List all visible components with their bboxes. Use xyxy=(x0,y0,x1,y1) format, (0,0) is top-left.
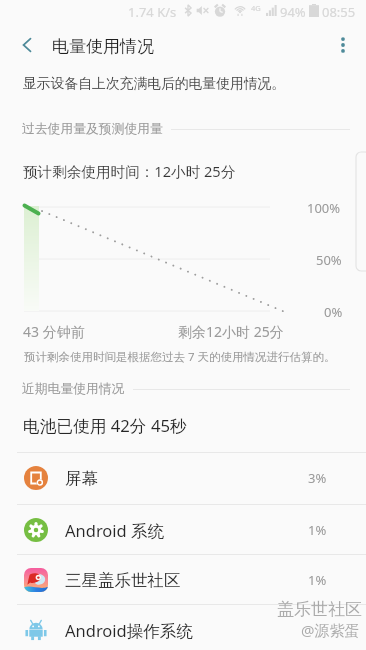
button[interactable]: Android 系统 xyxy=(0,505,366,555)
staticText: 1% xyxy=(308,521,327,539)
staticText: 4G xyxy=(251,3,261,13)
staticText: 0% xyxy=(324,303,343,321)
staticText: 屏幕 xyxy=(65,468,98,489)
button[interactable]: Android操作系统 xyxy=(0,605,366,650)
staticText: 50% xyxy=(316,251,342,269)
staticText: 盖乐世社区 xyxy=(277,599,362,620)
staticText: 预计剩余使用时间是根据您过去 7 天的使用情况进行估算的。 xyxy=(24,349,336,365)
button[interactable]: Back xyxy=(6,24,48,66)
staticText: 1.74 K/s xyxy=(128,3,177,21)
button[interactable]: More options xyxy=(322,24,364,66)
staticText: 100% xyxy=(307,199,341,217)
staticText: 过去使用量及预测使用量 xyxy=(22,121,163,137)
staticText: 剩余12小时 25分 xyxy=(178,322,284,341)
staticText: 显示设备自上次充满电后的电量使用情况。 xyxy=(23,75,286,92)
staticText: 08:55 xyxy=(322,3,356,21)
staticText: Android操作系统 xyxy=(65,619,193,642)
staticText: 1% xyxy=(308,571,327,589)
staticText: 94% xyxy=(280,3,306,21)
staticText: 电量使用情况 xyxy=(52,36,154,57)
button[interactable]: 三星盖乐世社区 xyxy=(0,555,366,605)
staticText: 预计剩余使用时间：12小时 25分 xyxy=(23,161,236,181)
staticText: @源紫蛋 xyxy=(301,620,360,640)
button[interactable]: 屏幕 xyxy=(0,453,366,503)
staticText: 电池已使用 42分 45秒 xyxy=(23,414,187,437)
staticText: 近期电量使用情况 xyxy=(22,381,125,397)
staticText: Android 系统 xyxy=(65,519,165,542)
staticText: 三星盖乐世社区 xyxy=(65,570,181,591)
staticText: 3% xyxy=(308,469,327,487)
staticText: 43 分钟前 xyxy=(23,322,85,341)
